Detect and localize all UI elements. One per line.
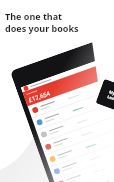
button[interactable] — [62, 170, 114, 182]
button[interactable]: Leads card — [95, 79, 114, 113]
staticText: My Leads — [107, 89, 114, 103]
staticText: does your books — [5, 22, 79, 34]
button[interactable] — [32, 84, 114, 130]
button[interactable] — [54, 145, 114, 182]
button[interactable] — [28, 72, 114, 118]
staticText: The one that — [5, 10, 62, 22]
button[interactable] — [41, 108, 114, 154]
button[interactable] — [36, 96, 114, 142]
staticText: £17,654 — [27, 89, 52, 104]
button[interactable] — [45, 121, 114, 167]
button[interactable] — [58, 157, 114, 182]
button[interactable] — [49, 133, 114, 179]
